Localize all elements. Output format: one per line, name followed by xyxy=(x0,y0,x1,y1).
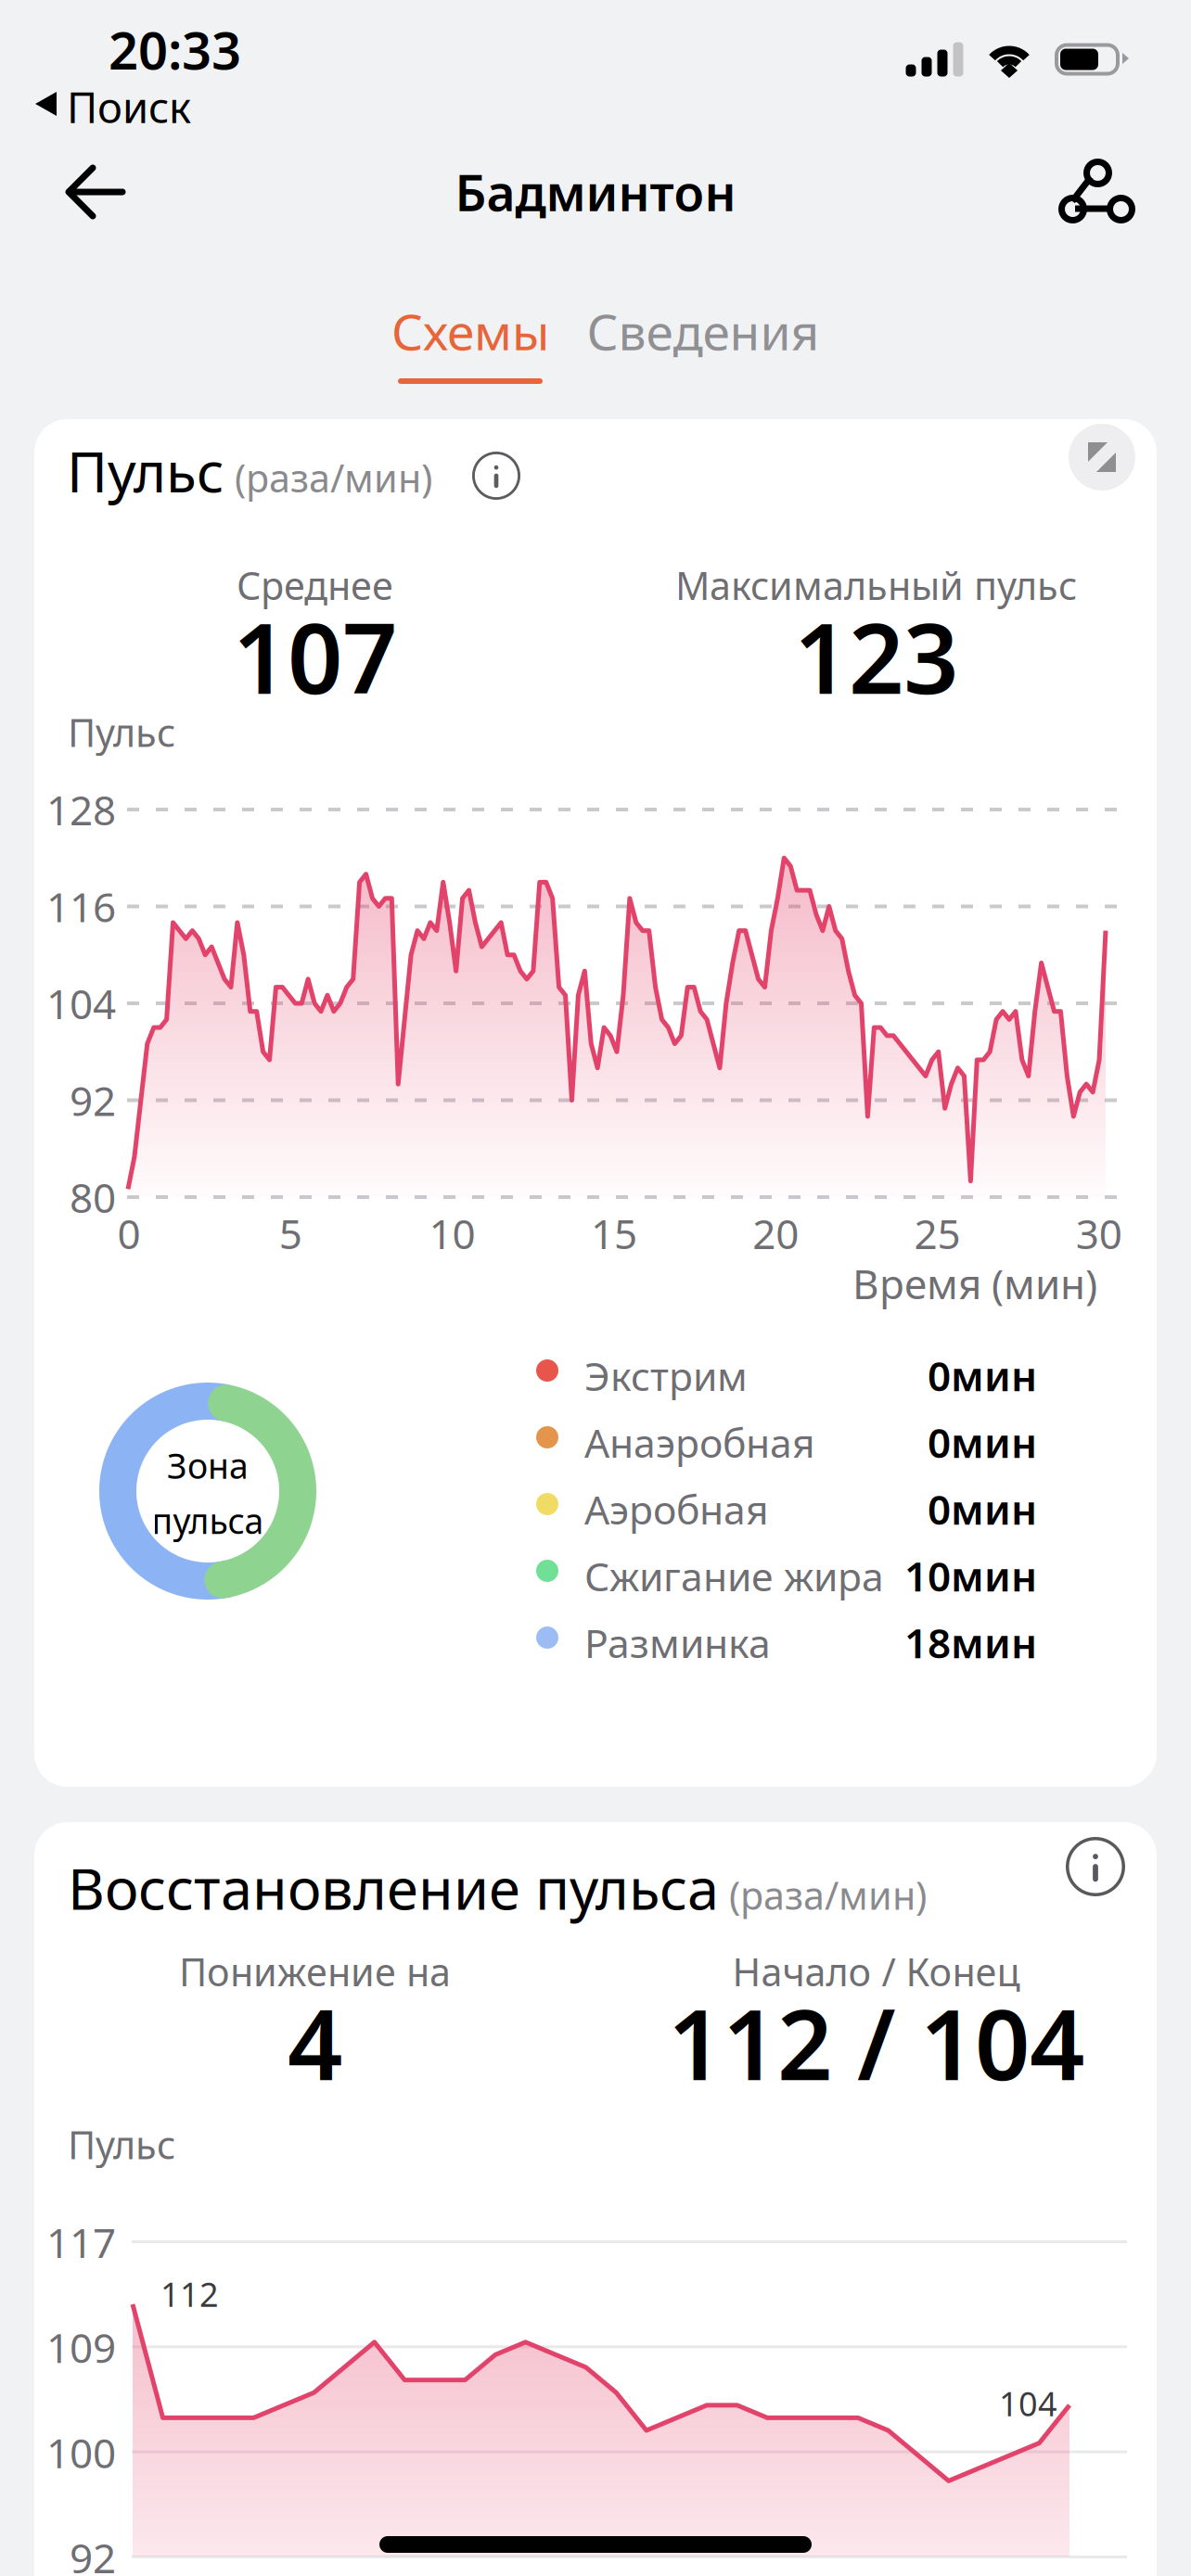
staticText: 104 xyxy=(46,976,116,1030)
staticText: 0 xyxy=(117,1206,141,1260)
staticText: пульса xyxy=(152,1498,264,1544)
staticText: 30 xyxy=(1076,1206,1122,1260)
staticText: 20 xyxy=(752,1206,799,1260)
staticText: Среднее xyxy=(237,560,393,611)
staticText: 80 xyxy=(70,1170,116,1224)
staticText: 5 xyxy=(279,1206,302,1260)
staticText: Пульс xyxy=(67,434,224,508)
staticText: Начало / Конец xyxy=(732,1946,1020,1997)
button[interactable]: Сведения xyxy=(583,295,824,367)
button[interactable]: Expand chart xyxy=(1069,424,1135,491)
button[interactable]: Share xyxy=(1031,136,1161,238)
staticText: Зона xyxy=(167,1442,249,1488)
button[interactable]: Info xyxy=(1062,1833,1129,1900)
staticText: 10мин xyxy=(904,1549,1037,1603)
staticText: 4 xyxy=(288,1979,342,2107)
staticText: Аэробная xyxy=(584,1483,769,1535)
staticText: 10 xyxy=(429,1206,475,1260)
staticText: Восстановление пульса xyxy=(68,1850,719,1925)
staticText: (раза/мин) xyxy=(719,1869,927,1920)
staticText: 20:33 xyxy=(109,15,241,84)
staticText: Время (мин) xyxy=(852,1256,1097,1310)
staticText: Пульс xyxy=(68,2119,175,2170)
staticText: 92 xyxy=(70,1073,116,1127)
staticText: 15 xyxy=(591,1206,637,1260)
staticText: Бадминтон xyxy=(455,159,736,225)
staticText: 117 xyxy=(46,2215,116,2269)
staticText: 0мин xyxy=(928,1415,1037,1469)
staticText: 128 xyxy=(46,782,116,837)
staticText: Экстрим xyxy=(584,1349,748,1402)
staticText: 112 / 104 xyxy=(668,1979,1084,2107)
staticText: 92 xyxy=(70,2530,116,2576)
staticText: Понижение на xyxy=(179,1946,451,1997)
button[interactable]: Схемы xyxy=(378,295,563,384)
staticText: (раза/мин) xyxy=(224,452,432,503)
staticText: Схемы xyxy=(391,298,549,364)
staticText: 112 xyxy=(160,2272,219,2316)
staticText: Пульс xyxy=(68,707,175,757)
staticText: 116 xyxy=(46,879,116,933)
staticText: 123 xyxy=(794,592,958,721)
staticText: 109 xyxy=(46,2320,116,2374)
staticText: Разминка xyxy=(584,1616,771,1669)
staticText: 0мин xyxy=(928,1482,1037,1536)
staticText: 18мин xyxy=(904,1615,1037,1669)
staticText: 104 xyxy=(999,2381,1057,2426)
staticText: 107 xyxy=(233,592,397,721)
staticText: Сведения xyxy=(587,298,820,364)
staticText: Анаэробная xyxy=(584,1416,815,1469)
staticText: 100 xyxy=(46,2425,116,2479)
staticText: Сжигание жира xyxy=(584,1549,884,1602)
staticText: Максимальный пульс xyxy=(675,560,1077,611)
staticText: Поиск xyxy=(67,79,191,135)
button[interactable]: Back xyxy=(0,141,186,243)
staticText: 0мин xyxy=(928,1348,1037,1402)
staticText: 25 xyxy=(914,1206,960,1260)
